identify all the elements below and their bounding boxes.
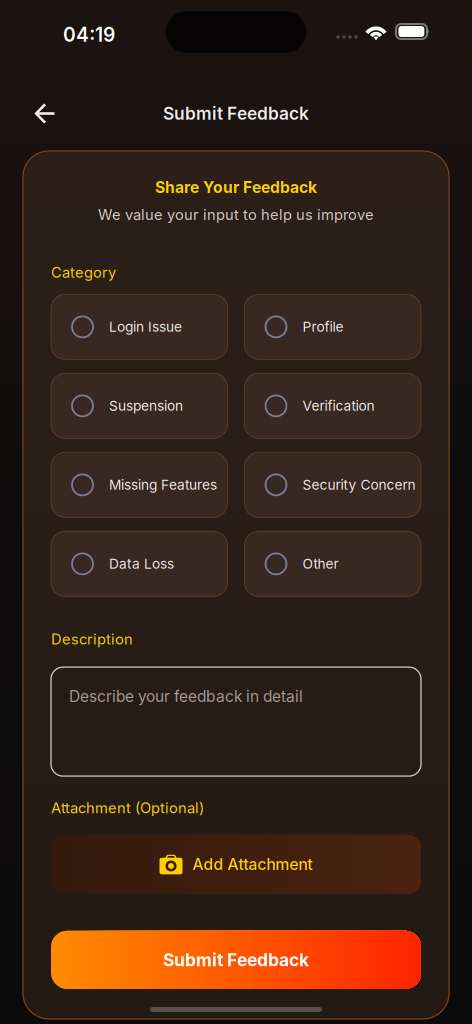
- button[interactable]: Add Attachment: [51, 835, 421, 894]
- staticText: Profile: [302, 319, 343, 335]
- button[interactable]: Login Issue: [51, 294, 227, 359]
- button[interactable]: Submit Feedback: [51, 931, 421, 989]
- staticText: 04:19: [63, 23, 115, 46]
- staticText: Submit Feedback: [163, 103, 309, 124]
- staticText: Verification: [302, 398, 374, 414]
- staticText: We value your input to help us improve: [98, 206, 374, 224]
- button[interactable]: Missing Features: [51, 452, 227, 517]
- button[interactable]: Describe your feedback in detail: [51, 667, 421, 776]
- staticText: Attachment (Optional): [51, 799, 204, 817]
- staticText: Login Issue: [109, 319, 182, 335]
- button[interactable]: Back: [23, 91, 67, 135]
- button[interactable]: Verification: [244, 373, 421, 438]
- staticText: Description: [51, 630, 133, 648]
- staticText: Security Concern: [302, 477, 415, 493]
- staticText: Data Loss: [109, 556, 174, 572]
- button[interactable]: Security Concern: [244, 452, 421, 517]
- staticText: Share Your Feedback: [155, 178, 317, 197]
- staticText: Other: [302, 556, 338, 572]
- button[interactable]: Suspension: [51, 373, 227, 438]
- staticText: Describe your feedback in detail: [69, 687, 303, 706]
- button[interactable]: Other: [244, 531, 421, 596]
- staticText: Submit Feedback: [163, 949, 309, 970]
- staticText: Suspension: [109, 398, 183, 414]
- button[interactable]: Profile: [244, 294, 421, 359]
- staticText: Category: [51, 264, 116, 281]
- staticText: Add Attachment: [192, 855, 312, 874]
- button[interactable]: Data Loss: [51, 531, 227, 596]
- staticText: Missing Features: [109, 477, 217, 493]
